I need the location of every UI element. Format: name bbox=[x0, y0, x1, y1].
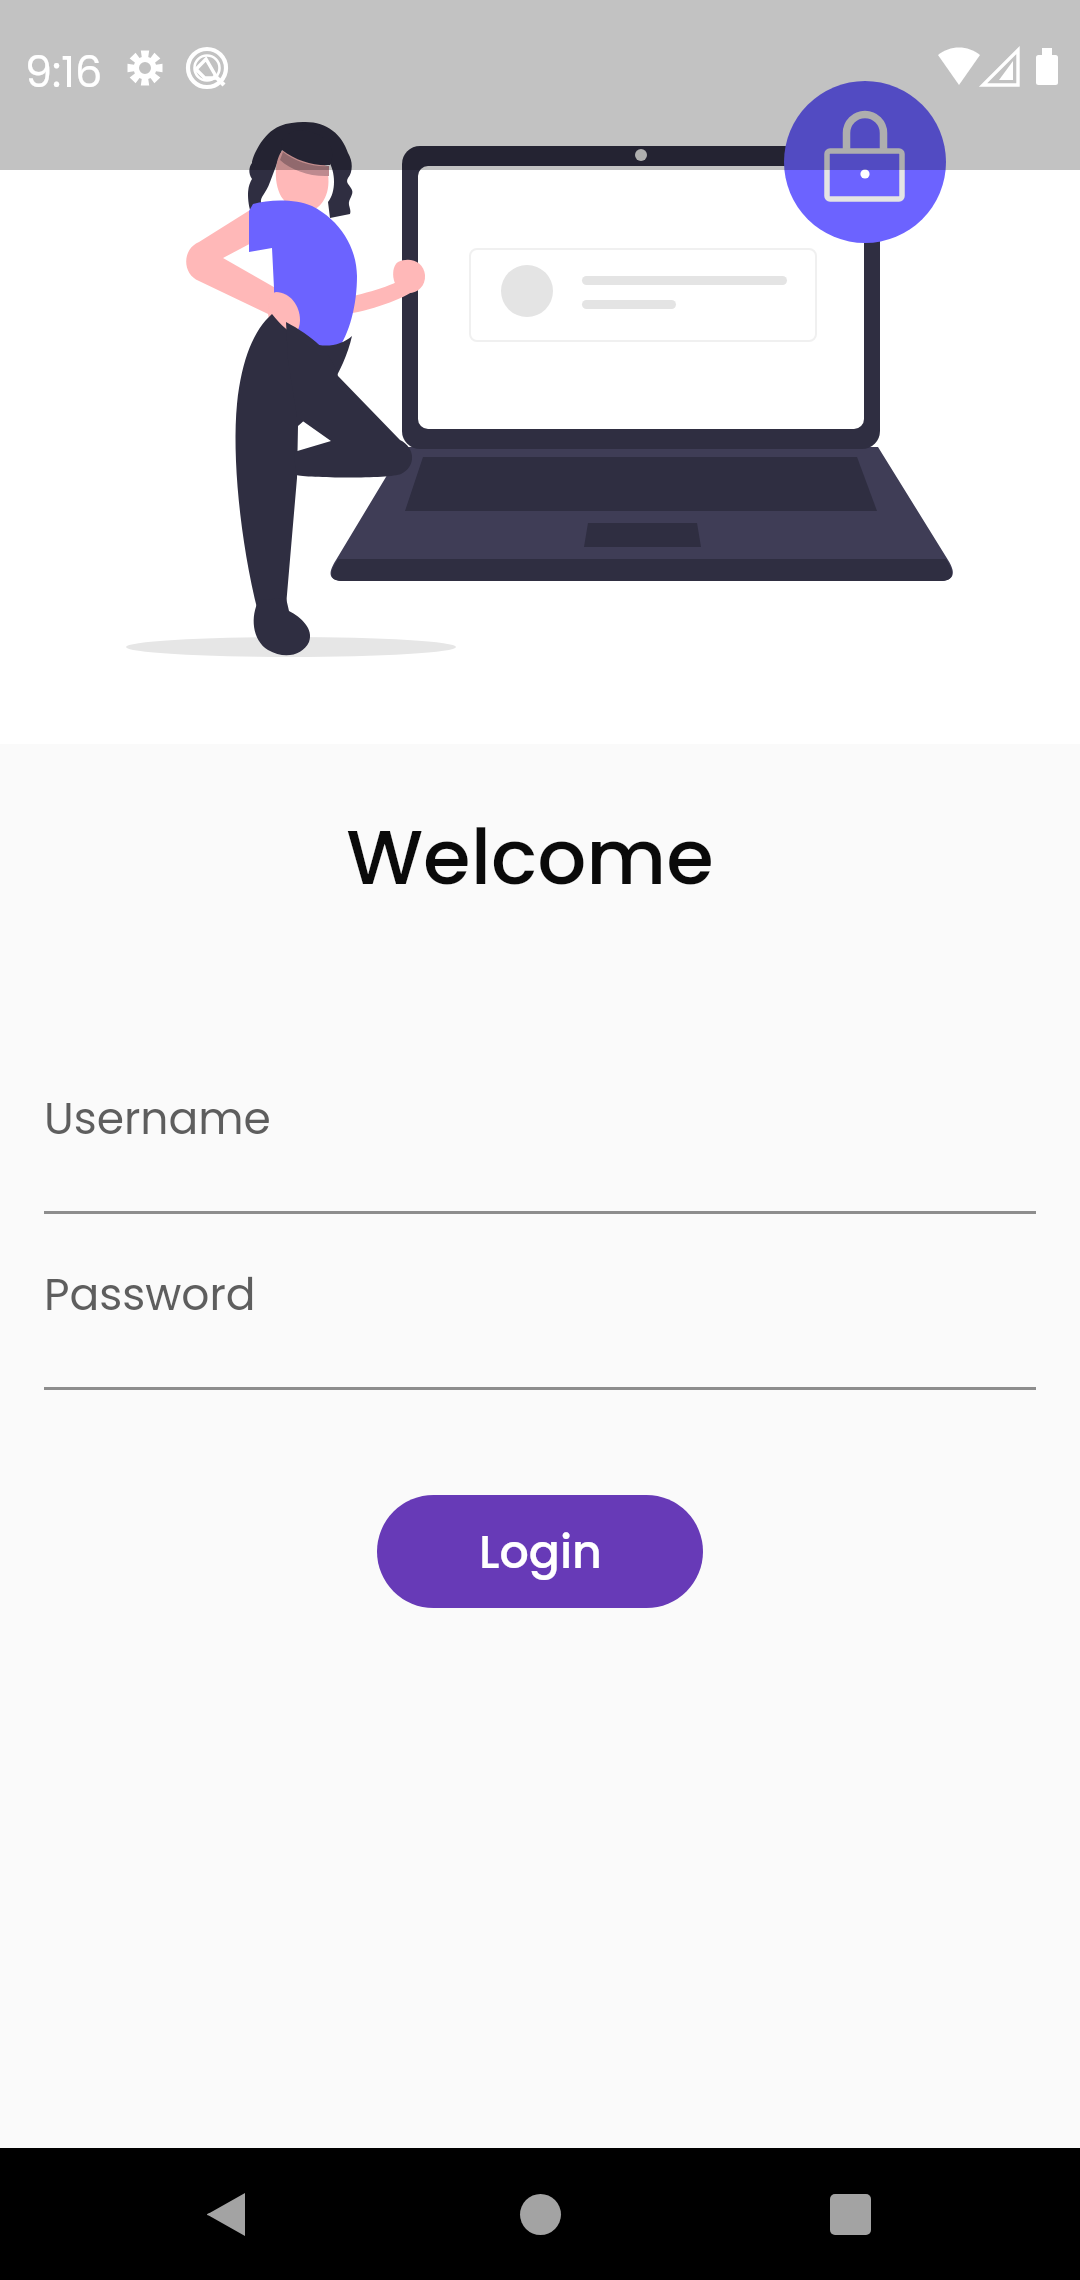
button[interactable]: Password bbox=[44, 1264, 1036, 1390]
button[interactable]: Home bbox=[494, 2170, 586, 2258]
button[interactable]: Username bbox=[44, 1088, 1036, 1214]
staticText: 9:16 bbox=[25, 42, 103, 102]
staticText: Login bbox=[479, 1520, 602, 1584]
button[interactable]: Back bbox=[180, 2170, 272, 2258]
button[interactable]: Login bbox=[377, 1495, 703, 1608]
staticText: Welcome bbox=[0, 803, 1070, 911]
staticText: Username bbox=[44, 1088, 271, 1150]
staticText: Password bbox=[44, 1264, 256, 1326]
button[interactable]: Recent apps bbox=[804, 2170, 896, 2258]
